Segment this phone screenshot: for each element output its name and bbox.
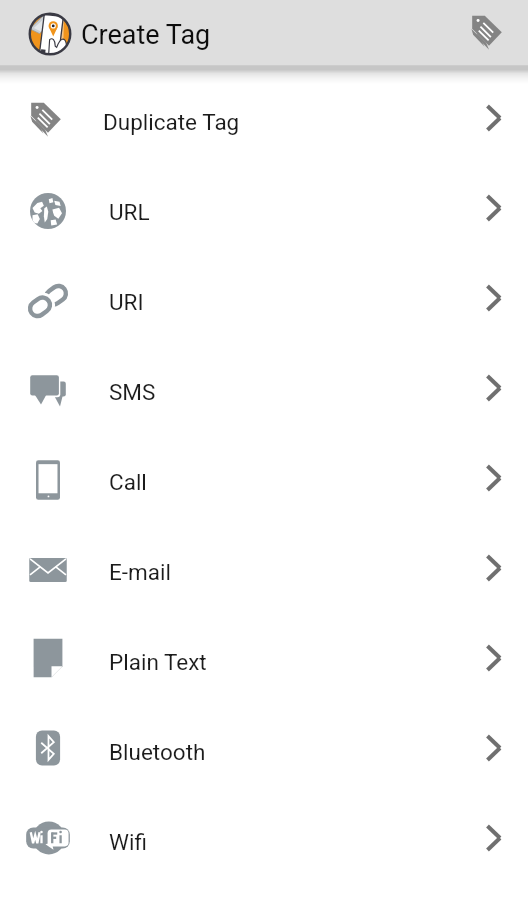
button[interactable]: Plain Text — [0, 617, 528, 707]
staticText: Wifi — [109, 829, 147, 855]
button[interactable]: SMS — [0, 347, 528, 437]
staticText: Call — [109, 469, 147, 495]
button[interactable]: Call — [0, 437, 528, 527]
staticText: URI — [109, 289, 144, 315]
button[interactable]: URL — [0, 167, 528, 257]
staticText: Bluetooth — [109, 739, 206, 765]
button[interactable]: E-mail — [0, 527, 528, 617]
button[interactable]: Wifi — [0, 797, 528, 887]
staticText: E-mail — [109, 559, 171, 585]
button[interactable]: Bluetooth — [0, 707, 528, 797]
staticText: Create Tag — [81, 19, 211, 51]
button[interactable]: Tags — [461, 2, 523, 64]
staticText: URL — [109, 199, 150, 225]
staticText: SMS — [109, 379, 156, 405]
button[interactable]: Duplicate Tag — [0, 77, 528, 167]
staticText: Duplicate Tag — [103, 109, 240, 135]
staticText: Plain Text — [109, 649, 207, 675]
button[interactable]: URI — [0, 257, 528, 347]
